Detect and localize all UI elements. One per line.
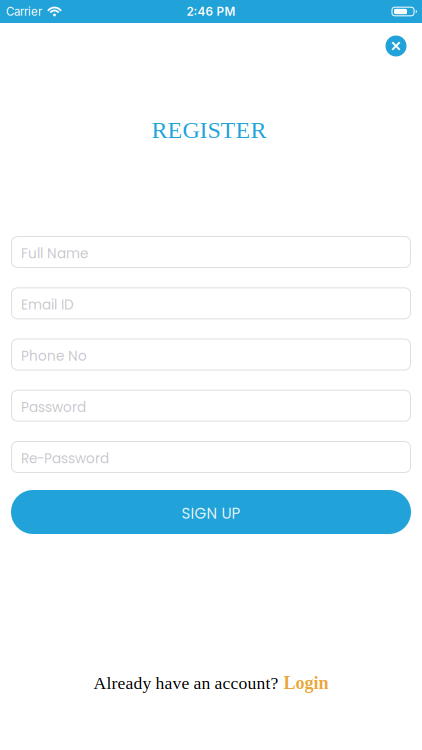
staticText: 2:46 PM xyxy=(186,4,235,19)
button[interactable]: Close xyxy=(385,35,406,56)
button[interactable]: SIGN UP xyxy=(11,490,411,534)
button[interactable]: Login xyxy=(283,673,328,693)
staticText: Already have an account? xyxy=(93,673,278,693)
staticText: Phone No xyxy=(21,346,87,365)
staticText: Full Name xyxy=(21,244,88,263)
staticText: Re-Password xyxy=(21,449,109,468)
staticText: Login xyxy=(283,673,328,693)
staticText: Email ID xyxy=(21,295,74,314)
staticText: REGISTER xyxy=(151,117,266,143)
staticText: SIGN UP xyxy=(181,503,240,524)
staticText: Password xyxy=(21,398,86,417)
staticText: Carrier xyxy=(6,5,42,18)
